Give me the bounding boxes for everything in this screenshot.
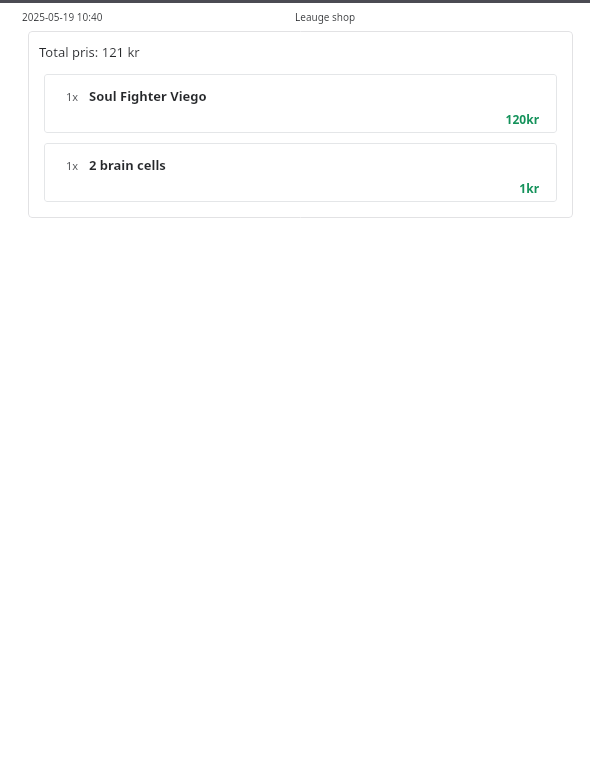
button[interactable]: 1x bbox=[44, 143, 557, 202]
button[interactable]: 1x bbox=[44, 74, 557, 133]
staticText: 1x bbox=[66, 158, 79, 173]
staticText: 2025-05-19 10:40 bbox=[22, 10, 103, 24]
staticText: Leauge shop bbox=[295, 10, 356, 24]
staticText: 1x bbox=[66, 89, 79, 104]
staticText: 120kr bbox=[66, 111, 539, 127]
staticText: Total pris: 121 kr bbox=[39, 43, 140, 61]
staticText: 2 brain cells bbox=[89, 156, 166, 174]
staticText: 1kr bbox=[66, 180, 539, 196]
staticText: Soul Fighter Viego bbox=[89, 87, 207, 105]
